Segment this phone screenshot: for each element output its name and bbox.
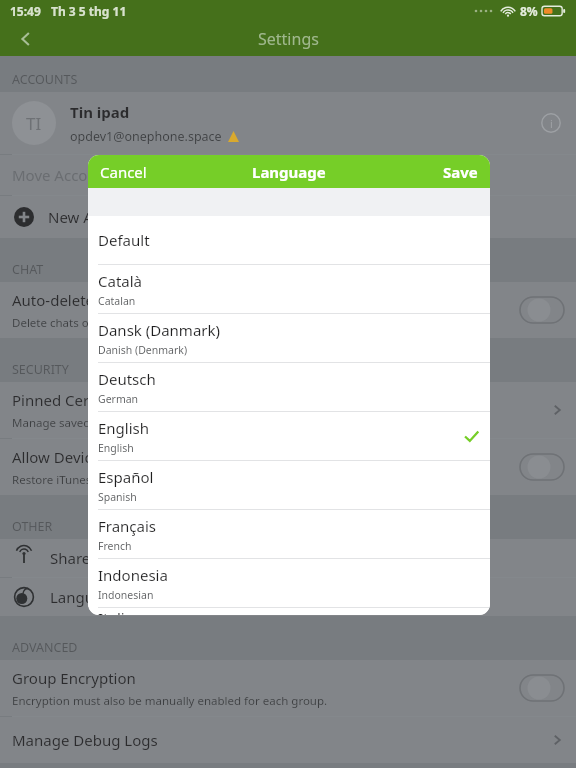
staticText: ADVANCED (12, 639, 78, 656)
staticText: TI (26, 112, 42, 135)
staticText: OTHER (12, 518, 53, 535)
button[interactable]: Toggle (520, 297, 564, 323)
staticText: 15:49 (10, 3, 41, 19)
staticText: Move Accounts (12, 165, 119, 185)
button[interactable]: Català (88, 265, 490, 313)
button[interactable]: Dansk (Danmark) (88, 314, 490, 362)
button[interactable]: Settings (0, 22, 576, 56)
staticText: Save (443, 162, 478, 182)
staticText: Language (252, 162, 326, 182)
staticText: Group Encryption (12, 668, 136, 688)
button[interactable]: Info (538, 110, 564, 136)
button[interactable]: TI (0, 92, 576, 154)
button[interactable]: Share (0, 539, 576, 577)
staticText: Default (98, 230, 150, 250)
staticText: Settings (258, 28, 319, 50)
staticText: Catalan (98, 294, 136, 308)
staticText: Manage saved SSL certificates (12, 415, 174, 431)
button[interactable]: Toggle (520, 675, 564, 701)
button[interactable]: Auto-delete (0, 282, 576, 338)
staticText: Tin ipad (70, 102, 130, 122)
staticText: Encryption must also be manually enabled… (12, 693, 328, 709)
button[interactable]: Français (88, 510, 490, 558)
staticText: Indonesia (98, 565, 168, 585)
staticText: i (550, 116, 553, 131)
button[interactable]: Cancel (88, 155, 209, 188)
staticText: Manage Debug Logs (12, 730, 158, 750)
button[interactable]: Manage Debug Logs (0, 717, 576, 763)
staticText: Language (50, 587, 121, 607)
staticText: French (98, 539, 132, 553)
staticText: SECURITY (12, 361, 69, 378)
staticText: Català (98, 271, 143, 291)
staticText: Th 3 5 thg 11 (51, 3, 127, 19)
button[interactable]: Save (443, 155, 490, 188)
button[interactable]: Deutsch (88, 363, 490, 411)
staticText: Auto-delete (12, 290, 95, 310)
button[interactable]: Pinned Certificates (0, 382, 576, 438)
staticText: Allow Device Backups (12, 447, 164, 467)
staticText: Italiano (98, 608, 152, 615)
button[interactable]: Allow Device Backups (0, 439, 576, 495)
button[interactable]: Italiano (88, 608, 490, 615)
staticText: Français (98, 516, 157, 536)
staticText: Share (50, 548, 91, 568)
button[interactable]: Group Encryption (0, 660, 576, 716)
button[interactable]: Español (88, 461, 490, 509)
staticText: opdev1@onephone.space (70, 128, 222, 145)
staticText: CHAT (12, 261, 44, 278)
staticText: ACCOUNTS (12, 71, 78, 88)
button[interactable]: Language (0, 578, 576, 616)
staticText: Delete chats on device after (12, 315, 162, 331)
staticText: English (98, 418, 150, 438)
staticText: English (98, 441, 134, 455)
button[interactable]: Default (88, 216, 490, 264)
staticText: Danish (Denmark) (98, 343, 188, 357)
button[interactable]: English (88, 412, 490, 460)
staticText: Restore iTunes backups (12, 472, 140, 488)
staticText: New Account (48, 207, 141, 227)
button[interactable]: Back (6, 22, 46, 56)
button[interactable]: Indonesia (88, 559, 490, 607)
staticText: Pinned Certificates (12, 390, 145, 410)
staticText: Deutsch (98, 369, 156, 389)
staticText: Indonesian (98, 588, 154, 602)
staticText: Cancel (100, 162, 147, 182)
staticText: German (98, 392, 139, 406)
button[interactable]: Toggle (520, 454, 564, 480)
staticText: 8% (520, 3, 538, 19)
staticText: Español (98, 467, 154, 487)
button[interactable]: New Account (0, 196, 576, 238)
staticText: Spanish (98, 490, 137, 504)
staticText: Dansk (Danmark) (98, 320, 221, 340)
button[interactable]: Move Accounts (0, 155, 576, 195)
